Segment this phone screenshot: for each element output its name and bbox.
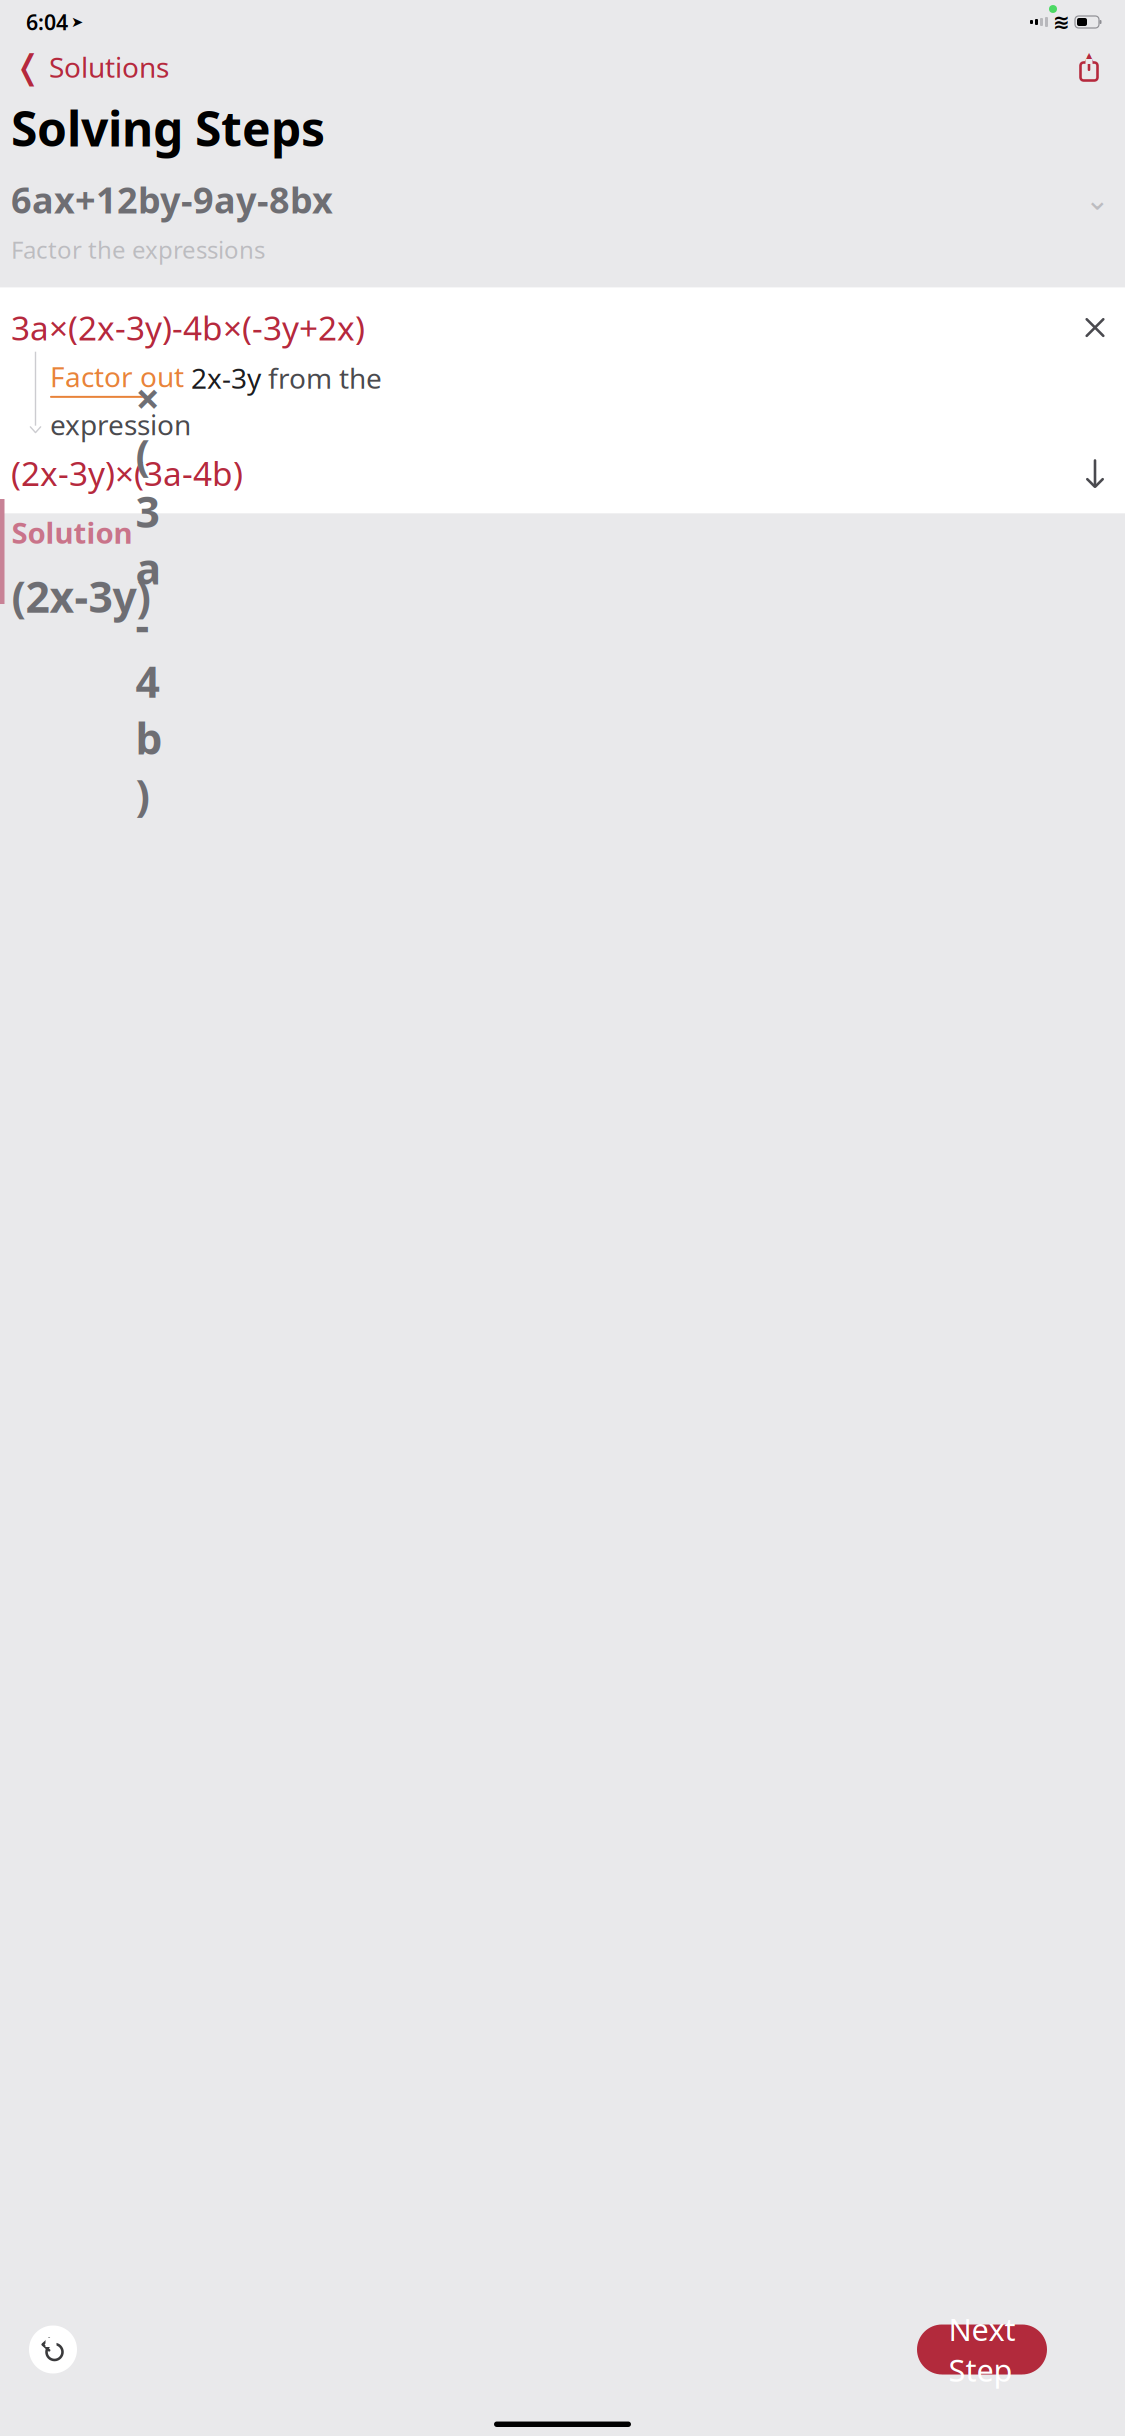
staticText: 6ax+12by-9ay-8bx [11, 176, 333, 223]
staticText: Next Step [948, 2309, 1015, 2390]
staticText: ❬ [14, 48, 42, 86]
staticText: ×(3a-4b) [135, 370, 162, 823]
staticText: Solving Steps [11, 96, 325, 160]
button[interactable]: Close step [1073, 306, 1117, 350]
button[interactable]: Next Step [917, 2324, 1047, 2374]
staticText: 3a×(2x-3y)-4b×(-3y+2x) [11, 305, 365, 350]
staticText: 2x-3y [184, 359, 261, 396]
staticText: ▲ [1084, 49, 1094, 64]
staticText: Factor out [50, 358, 184, 395]
staticText: ≋ [1053, 11, 1070, 33]
staticText: (2x-3y)×(3a-4b) [11, 451, 243, 495]
button[interactable]: Undo [23, 2319, 83, 2379]
staticText: Solution [11, 513, 132, 552]
staticText: Factor the expressions [11, 233, 265, 265]
button[interactable]: ❬ [0, 42, 169, 92]
staticText: 6:04 [26, 8, 68, 36]
staticText: from the [261, 359, 382, 396]
staticText: ➤ [71, 14, 83, 30]
staticText: Solutions [49, 48, 169, 86]
staticText: expression [50, 406, 191, 443]
button[interactable]: 6ax+12by-9ay-8bx [0, 170, 1125, 277]
button[interactable]: Share [1069, 47, 1125, 87]
staticText: (2x-3y) [11, 568, 150, 625]
staticText: ⌄ [1085, 183, 1110, 216]
button[interactable]: Scroll to next step [1073, 451, 1117, 495]
